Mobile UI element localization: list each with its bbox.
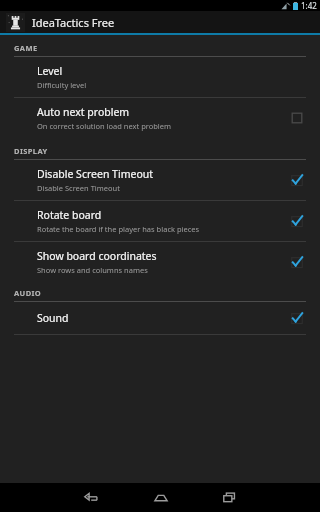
button[interactable]: Checked xyxy=(288,212,306,230)
button[interactable]: Show board coordinates xyxy=(0,242,320,282)
staticText: Sound xyxy=(37,311,69,325)
staticText: IdeaTactics Free xyxy=(32,15,115,30)
button[interactable]: Recents xyxy=(195,483,264,512)
staticText: Show rows and columns names xyxy=(37,265,148,275)
button[interactable]: Auto next problem xyxy=(0,98,320,138)
staticText: DISPLAY xyxy=(14,146,48,156)
staticText: Rotate the board if the player has black… xyxy=(37,224,200,234)
staticText: Disable Screen Timeout xyxy=(37,183,120,193)
staticText: AUDIO xyxy=(14,288,42,298)
staticText: Disable Screen Timeout xyxy=(37,167,154,181)
staticText: 1:42 xyxy=(301,0,317,10)
staticText: Rotate board xyxy=(37,208,102,222)
staticText: Difficulty level xyxy=(37,80,87,90)
staticText: Auto next problem xyxy=(37,105,130,119)
button[interactable]: Unchecked xyxy=(288,109,306,127)
button[interactable]: Level xyxy=(0,57,320,97)
button[interactable]: Checked xyxy=(288,171,306,189)
button[interactable]: Home xyxy=(126,483,195,512)
button[interactable]: Checked xyxy=(288,309,306,327)
staticText: Show board coordinates xyxy=(37,249,157,263)
button[interactable]: Checked xyxy=(288,253,306,271)
button[interactable]: Disable Screen Timeout xyxy=(0,160,320,200)
staticText: Level xyxy=(37,64,63,78)
button[interactable]: Sound xyxy=(0,302,320,334)
button[interactable]: Rotate board xyxy=(0,201,320,241)
button[interactable]: Back xyxy=(56,483,126,512)
staticText: On correct solution load next problem xyxy=(37,121,172,131)
staticText: GAME xyxy=(14,43,38,53)
